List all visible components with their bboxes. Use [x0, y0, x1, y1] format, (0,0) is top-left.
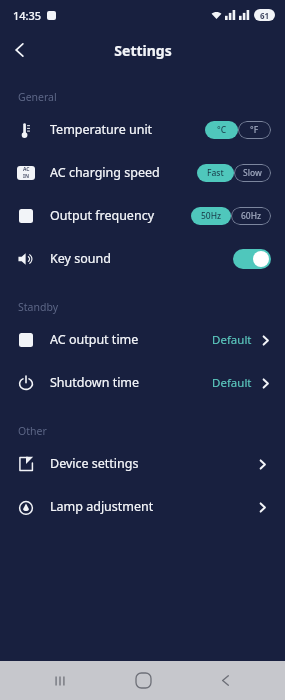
staticText: Temperature unit [50, 121, 205, 138]
staticText: 61 [260, 10, 270, 21]
button[interactable]: 60Hz [231, 207, 271, 225]
staticText: Other [18, 424, 47, 438]
staticText: Slow [243, 167, 262, 179]
staticText: AC [23, 166, 30, 173]
staticText: Device settings [50, 455, 253, 472]
staticText: Default [212, 375, 252, 391]
staticText: Standby [18, 300, 58, 314]
staticText: AC output time [50, 331, 212, 348]
button[interactable]: Temperature unit [0, 108, 285, 151]
button[interactable]: Recents [38, 661, 82, 700]
staticText: AC charging speed [50, 164, 197, 181]
staticText: Lamp adjustment [50, 498, 253, 515]
button[interactable]: Output frequency [0, 194, 285, 237]
button[interactable]: Shutdown time [0, 361, 285, 404]
button[interactable]: Fast [197, 164, 234, 182]
staticText: °F [250, 124, 259, 136]
button[interactable]: Key sound toggle [233, 249, 271, 269]
staticText: 14:35 [13, 8, 42, 23]
button[interactable]: Slow [234, 164, 271, 182]
staticText: IN [23, 173, 30, 180]
button[interactable]: Back [0, 30, 40, 70]
button[interactable]: 50Hz [191, 207, 231, 225]
staticText: 60Hz [241, 210, 262, 222]
button[interactable]: °F [238, 121, 271, 139]
staticText: Default [212, 332, 252, 348]
button[interactable]: Key sound [0, 237, 285, 280]
staticText: 50Hz [201, 210, 222, 222]
staticText: Fast [207, 167, 224, 179]
button[interactable]: Back [203, 661, 247, 700]
staticText: °C [217, 124, 227, 136]
staticText: Shutdown time [50, 374, 212, 391]
staticText: Settings [114, 41, 172, 60]
button[interactable]: °C [205, 121, 238, 139]
button[interactable]: Home [121, 661, 165, 700]
staticText: Output frequency [50, 207, 191, 224]
staticText: Key sound [50, 250, 233, 267]
button[interactable]: AC [0, 151, 285, 194]
button[interactable]: Device settings [0, 442, 285, 485]
staticText: General [18, 90, 57, 104]
button[interactable]: Lamp adjustment [0, 485, 285, 528]
button[interactable]: AC output time [0, 318, 285, 361]
